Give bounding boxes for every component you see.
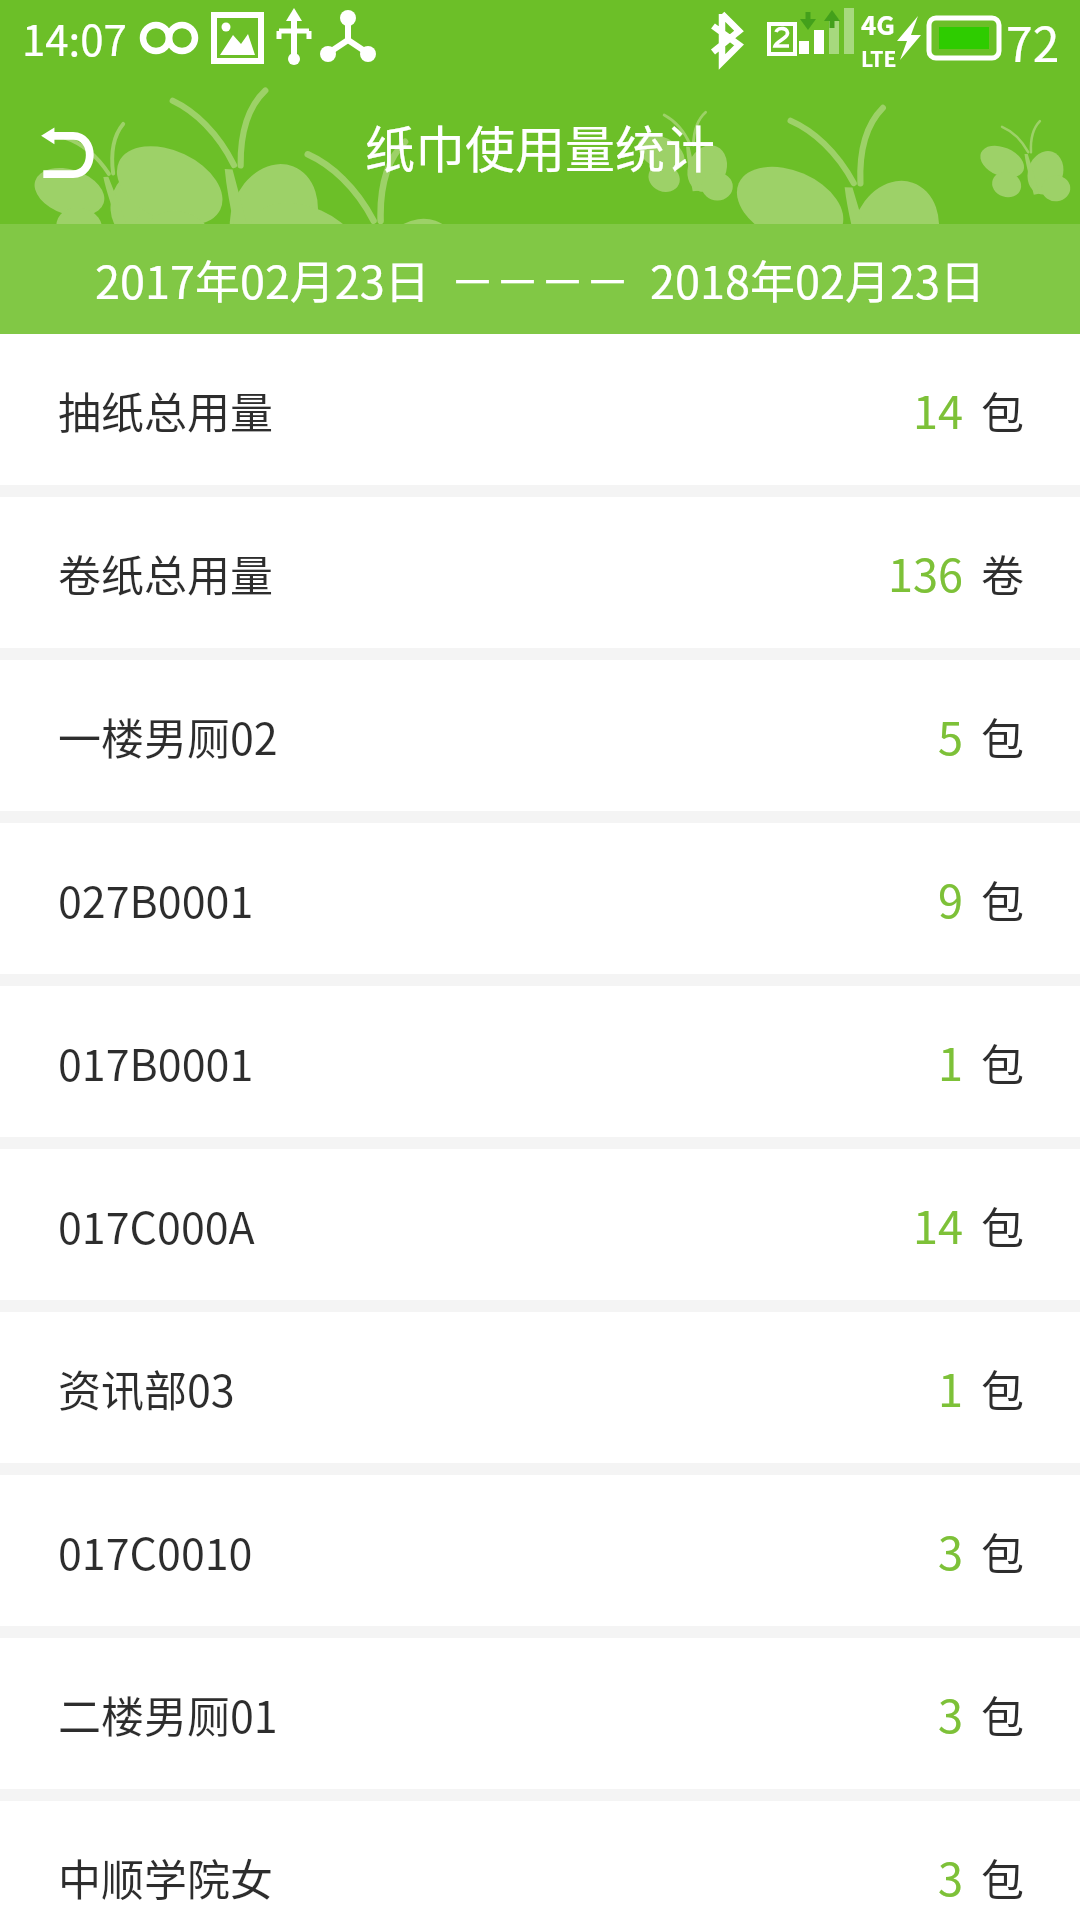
staticText: 卷 (981, 542, 1024, 604)
staticText: 3 (938, 1518, 963, 1583)
staticText: 中顺学院女 (58, 1846, 273, 1908)
button[interactable]: 一楼男厕02 (0, 660, 1080, 811)
staticText: 包 (981, 1031, 1024, 1093)
button[interactable]: Back (30, 126, 104, 184)
staticText: 2017年02月23日 －－－－ 2018年02月23日 (95, 247, 985, 312)
staticText: 72 (1006, 6, 1060, 76)
button[interactable]: 017C0010 (0, 1475, 1080, 1626)
staticText: 二楼男厕01 (58, 1683, 278, 1745)
staticText: 14:07 (22, 7, 127, 68)
button[interactable]: 027B0001 (0, 823, 1080, 974)
button[interactable]: 中顺学院女 (0, 1801, 1080, 1920)
staticText: 1 (938, 1355, 963, 1420)
button[interactable]: 二楼男厕01 (0, 1638, 1080, 1789)
staticText: LTE (861, 43, 897, 73)
staticText: 包 (981, 868, 1024, 930)
staticText: 抽纸总用量 (58, 379, 273, 441)
button[interactable]: 017B0001 (0, 986, 1080, 1137)
staticText: 017B0001 (58, 1031, 254, 1093)
staticText: 4G (861, 5, 895, 43)
button[interactable]: 卷纸总用量 (0, 497, 1080, 648)
staticText: 包 (981, 705, 1024, 767)
staticText: 14 (913, 377, 963, 442)
staticText: 纸巾使用量统计 (365, 110, 715, 182)
staticText: 3 (938, 1681, 963, 1746)
staticText: 一楼男厕02 (58, 705, 278, 767)
staticText: 136 (888, 540, 963, 605)
staticText: 包 (981, 1194, 1024, 1256)
button[interactable]: 资讯部03 (0, 1312, 1080, 1463)
staticText: 027B0001 (58, 868, 254, 930)
staticText: 14 (913, 1192, 963, 1257)
staticText: 3 (938, 1844, 963, 1909)
button[interactable]: 抽纸总用量 (0, 334, 1080, 485)
staticText: 5 (938, 703, 963, 768)
staticText: 包 (981, 1683, 1024, 1745)
staticText: 包 (981, 1846, 1024, 1908)
staticText: 1 (938, 1029, 963, 1094)
staticText: 包 (981, 379, 1024, 441)
staticText: 包 (981, 1357, 1024, 1419)
button[interactable]: 017C000A (0, 1149, 1080, 1300)
staticText: 资讯部03 (58, 1357, 235, 1419)
staticText: 017C0010 (58, 1520, 253, 1582)
staticText: 卷纸总用量 (58, 542, 273, 604)
staticText: 017C000A (58, 1194, 255, 1256)
staticText: 9 (938, 866, 963, 931)
staticText: 包 (981, 1520, 1024, 1582)
